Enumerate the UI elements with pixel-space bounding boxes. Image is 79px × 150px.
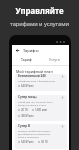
staticText: тарифами и услугами xyxy=(10,20,69,28)
staticText: Мой тарифный план xyxy=(16,69,53,74)
staticText: 20 ГБ xyxy=(21,108,28,112)
staticText: Тариф для тех, кто хочет быть xyxy=(18,100,53,103)
staticText: 30 ГБ xyxy=(41,140,48,144)
staticText: сетях и интернета xyxy=(18,135,39,138)
button[interactable]: Услуги xyxy=(40,56,69,63)
staticText: 380 ₽/мес xyxy=(21,114,34,118)
staticText: Тариф xyxy=(21,57,32,62)
staticText: для общения в социальных xyxy=(18,132,51,135)
staticText: Супер мощ+ xyxy=(18,95,37,99)
staticText: Безлимитный 240 xyxy=(18,74,46,78)
staticText: Управляйте xyxy=(15,6,64,17)
staticText: 1400 мин xyxy=(35,108,48,112)
staticText: 640 ₽/мес xyxy=(21,84,34,88)
staticText: Тарифный план с безлимитным xyxy=(18,79,56,82)
staticText: 540 ₽/мес xyxy=(21,140,34,144)
button[interactable]: Супер мощ+ xyxy=(15,95,67,121)
staticText: Супер В xyxy=(18,124,31,128)
button[interactable]: Безлимитный 240 xyxy=(15,74,67,91)
staticText: всегда на связи и в сети xyxy=(18,103,46,106)
staticText: Услуги xyxy=(49,57,60,62)
button[interactable]: Супер В xyxy=(15,124,67,149)
staticText: Больше гигабайтов и минут xyxy=(18,129,51,132)
button[interactable]: Тариф xyxy=(12,56,40,63)
button[interactable]: Back xyxy=(12,46,23,55)
staticText: Тарифы xyxy=(23,48,39,53)
